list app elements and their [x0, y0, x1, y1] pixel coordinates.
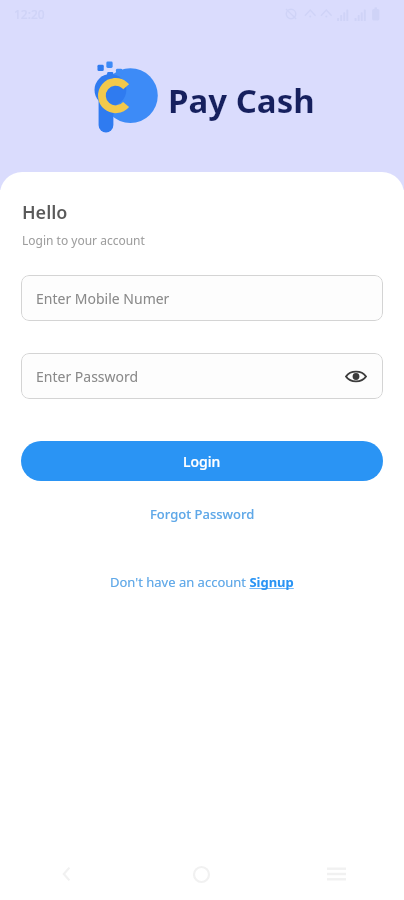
- staticText: 12:20: [14, 6, 45, 22]
- staticText: Enter Mobile Numer: [36, 289, 170, 308]
- button[interactable]: Don't have an account Signup: [100, 569, 304, 595]
- staticText: Hello: [22, 200, 68, 225]
- staticText: Don't have an account Signup: [110, 573, 294, 591]
- button[interactable]: Enter Mobile Numer: [21, 275, 383, 321]
- button[interactable]: Enter Password: [21, 353, 383, 399]
- staticText: Pay Cash: [168, 78, 315, 123]
- staticText: Forgot Password: [150, 505, 255, 523]
- button[interactable]: Login: [21, 441, 383, 481]
- button[interactable]: Forgot Password: [136, 501, 269, 527]
- staticText: Login: [183, 452, 221, 471]
- button[interactable]: Toggle password visibility: [341, 361, 371, 391]
- staticText: Enter Password: [36, 367, 139, 386]
- staticText: Login to your account: [22, 232, 145, 248]
